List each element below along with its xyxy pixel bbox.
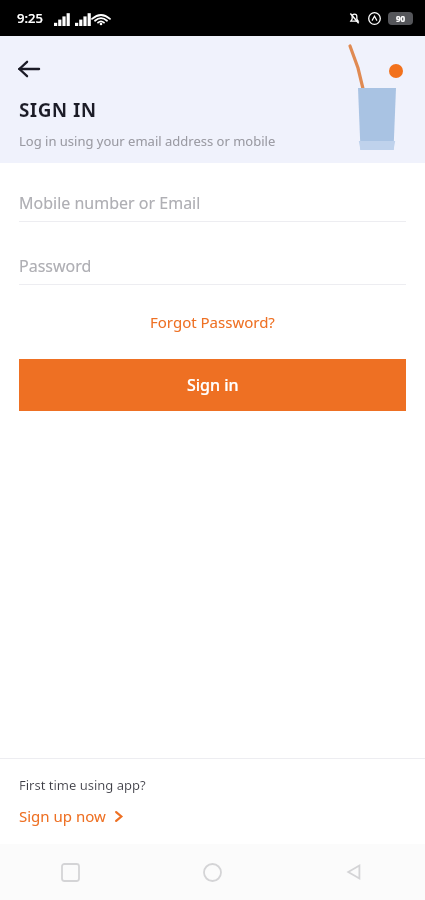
staticText: Forgot Password? bbox=[150, 312, 275, 332]
button[interactable]: Mobile number or Email bbox=[0, 184, 425, 222]
button[interactable]: Forgot Password? bbox=[136, 306, 289, 338]
staticText: Sign in bbox=[187, 374, 239, 396]
button[interactable]: Back bbox=[8, 48, 50, 90]
staticText: SIGN IN bbox=[19, 97, 97, 123]
button[interactable]: Password bbox=[0, 247, 425, 285]
button[interactable]: Home bbox=[141, 844, 283, 900]
button[interactable]: Sign up now bbox=[19, 806, 125, 826]
staticText: 9:25 bbox=[17, 9, 43, 27]
staticText: Sign up now bbox=[19, 806, 106, 826]
staticText: Mobile number or Email bbox=[19, 192, 201, 214]
button[interactable]: Sign in bbox=[19, 359, 406, 411]
button[interactable]: Back bbox=[283, 844, 425, 900]
staticText: First time using app? bbox=[19, 776, 146, 794]
staticText: Password bbox=[19, 255, 92, 277]
staticText: Log in using your email address or mobil… bbox=[19, 132, 276, 150]
staticText: 90 bbox=[396, 13, 406, 24]
button[interactable]: Recent apps bbox=[0, 844, 141, 900]
